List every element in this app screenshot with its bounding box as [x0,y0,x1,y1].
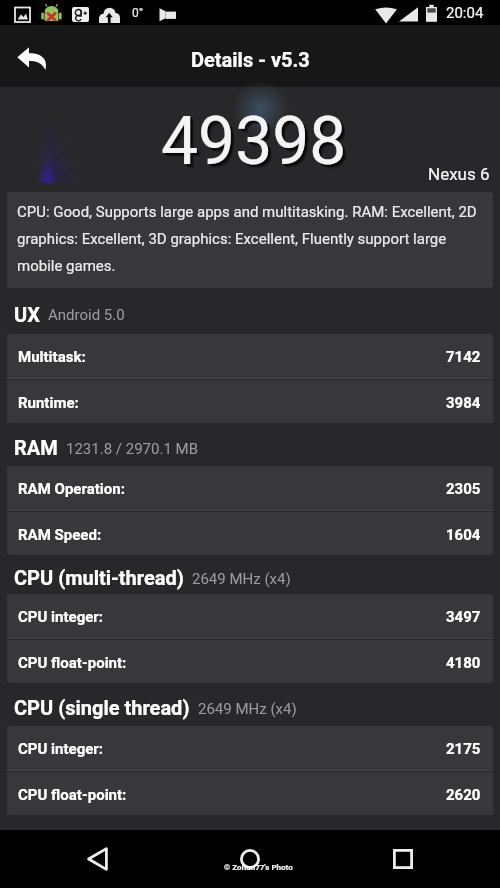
staticText: Details - v5.3 [191,48,310,71]
staticText: CPU float-point: [18,786,127,804]
button[interactable]: CPU: Good, Supports large apps and multi… [7,192,493,288]
staticText: 7142 [446,348,481,366]
button[interactable]: CPU float-point: [7,640,493,683]
staticText: CPU float-point: [18,654,127,672]
button[interactable]: CPU float-point: [7,772,493,815]
staticText: CPU integer: [18,740,104,758]
button[interactable]: Recent apps [375,831,431,887]
staticText: 49398 [164,106,350,183]
staticText: 49398 [161,103,347,180]
staticText: CPU (single thread) [14,696,190,719]
staticText: 1604 [446,526,481,544]
staticText: 20:04 [446,4,484,22]
button[interactable]: Home [222,831,278,887]
staticText: RAM Operation: [18,480,125,498]
staticText: © Zoltan77's Photo [224,863,293,872]
staticText: 49398 [163,105,349,182]
staticText: 0° [132,6,144,20]
staticText: 3984 [446,394,481,412]
staticText: 3497 [446,608,481,626]
staticText: 49398 [165,107,351,184]
button[interactable]: Multitask: [7,334,493,378]
staticText: CPU (multi-thread) [14,566,184,589]
button[interactable]: CPU integer: [7,594,493,638]
staticText: RAM Speed: [18,526,102,544]
staticText: Android 5.0 [48,306,125,324]
button[interactable]: CPU integer: [7,726,493,770]
staticText: 1231.8 / 2970.1 MB [66,440,199,458]
staticText: Multitask: [18,348,86,366]
button[interactable]: RAM Speed: [7,512,493,555]
button[interactable]: Back [69,831,125,887]
staticText: 2305 [446,480,481,498]
staticText: RAM [14,436,58,459]
staticText: 4180 [446,654,481,672]
button[interactable]: Back [4,30,60,86]
button[interactable]: Runtime: [7,380,493,423]
staticText: 2649 MHz (x4) [192,570,291,588]
staticText: 2620 [446,786,481,804]
staticText: CPU: Good, Supports large apps and multi… [17,203,483,275]
staticText: UX [14,303,40,326]
staticText: Nexus 6 [428,164,490,184]
staticText: 2649 MHz (x4) [198,700,297,718]
button[interactable]: RAM Operation: [7,466,493,510]
staticText: Runtime: [18,394,79,412]
staticText: CPU integer: [18,608,104,626]
staticText: 2175 [446,740,481,758]
